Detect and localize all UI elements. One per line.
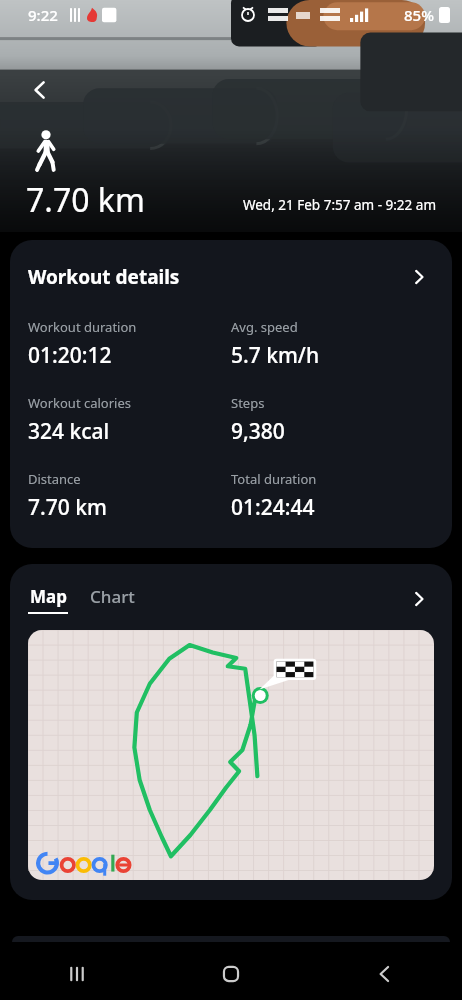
staticText: 85%	[404, 5, 434, 25]
staticText: 5.7 km/h	[231, 341, 320, 370]
staticText: 9,380	[231, 417, 285, 446]
staticText: 01:20:12	[28, 341, 112, 370]
button[interactable]: Back	[308, 948, 462, 1000]
staticText: Wed, 21 Feb 7:57 am - 9:22 am	[242, 196, 436, 214]
button[interactable]: Back	[18, 68, 62, 112]
staticText: Distance	[28, 470, 81, 488]
staticText: Workout details	[28, 264, 180, 290]
staticText: Chart	[90, 585, 135, 608]
button[interactable]: Recents	[0, 948, 154, 1000]
staticText: Avg. speed	[231, 318, 298, 336]
button[interactable]: Chart	[90, 585, 135, 614]
button[interactable]: Route map	[28, 630, 434, 880]
staticText: 7.70 km	[26, 178, 145, 222]
button[interactable]: Map	[28, 585, 72, 614]
button[interactable]: Open details	[404, 262, 434, 292]
button[interactable]: Workout details	[10, 240, 452, 548]
staticText: 7.70 km	[28, 493, 107, 522]
staticText: Map	[30, 585, 67, 608]
button[interactable]: Open details	[404, 584, 434, 614]
button[interactable]: Home	[154, 948, 308, 1000]
staticText: Steps	[231, 394, 265, 412]
staticText: 01:24:44	[231, 493, 315, 522]
staticText: Workout calories	[28, 394, 132, 412]
staticText: 324 kcal	[28, 417, 110, 446]
staticText: 9:22	[28, 5, 58, 25]
staticText: Workout duration	[28, 318, 137, 336]
staticText: Total duration	[231, 470, 317, 488]
